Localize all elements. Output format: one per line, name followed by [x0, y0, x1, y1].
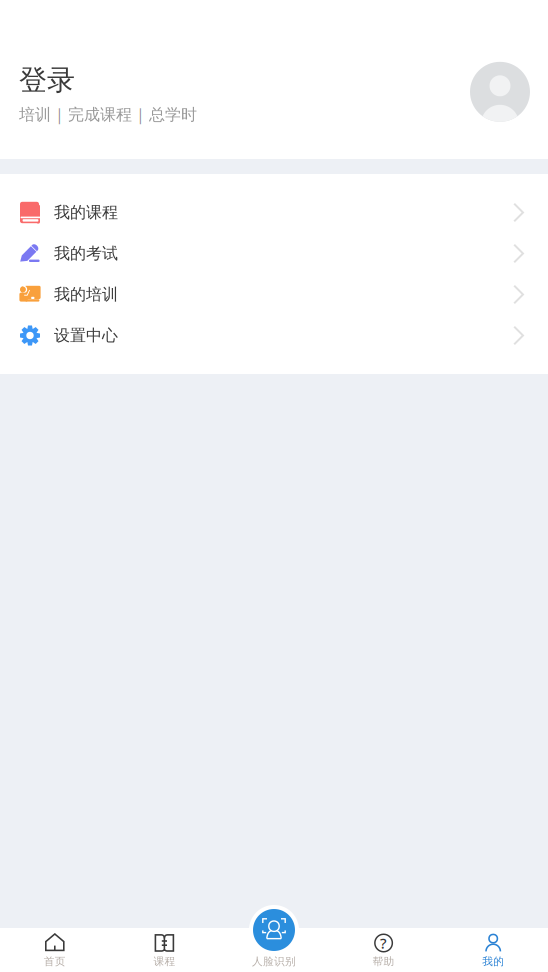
- button[interactable]: 课程: [110, 928, 219, 972]
- button[interactable]: 人脸识别: [249, 905, 299, 955]
- staticText: 设置中心: [54, 326, 118, 345]
- staticText: 登录: [19, 63, 75, 97]
- button[interactable]: 设置中心: [0, 315, 548, 356]
- staticText: 培训 | 完成课程 | 总学时: [19, 103, 197, 125]
- staticText: 课程: [153, 955, 175, 968]
- button[interactable]: 我的课程: [0, 192, 548, 233]
- staticText: 我的考试: [54, 244, 118, 263]
- staticText: 我的课程: [54, 203, 118, 222]
- button[interactable]: 我的培训: [0, 274, 548, 315]
- staticText: ?: [380, 933, 387, 953]
- staticText: 人脸识别: [252, 955, 296, 968]
- button[interactable]: 我的: [438, 928, 548, 972]
- button[interactable]: ?: [329, 928, 438, 972]
- staticText: 我的培训: [54, 285, 118, 304]
- button[interactable]: 我的考试: [0, 233, 548, 274]
- button[interactable]: 首页: [0, 928, 110, 972]
- button[interactable]: Profile photo: [470, 62, 530, 122]
- staticText: 帮助: [373, 955, 395, 968]
- staticText: 我的: [482, 955, 504, 968]
- button[interactable]: 人脸识别: [219, 928, 329, 972]
- staticText: 首页: [44, 955, 66, 968]
